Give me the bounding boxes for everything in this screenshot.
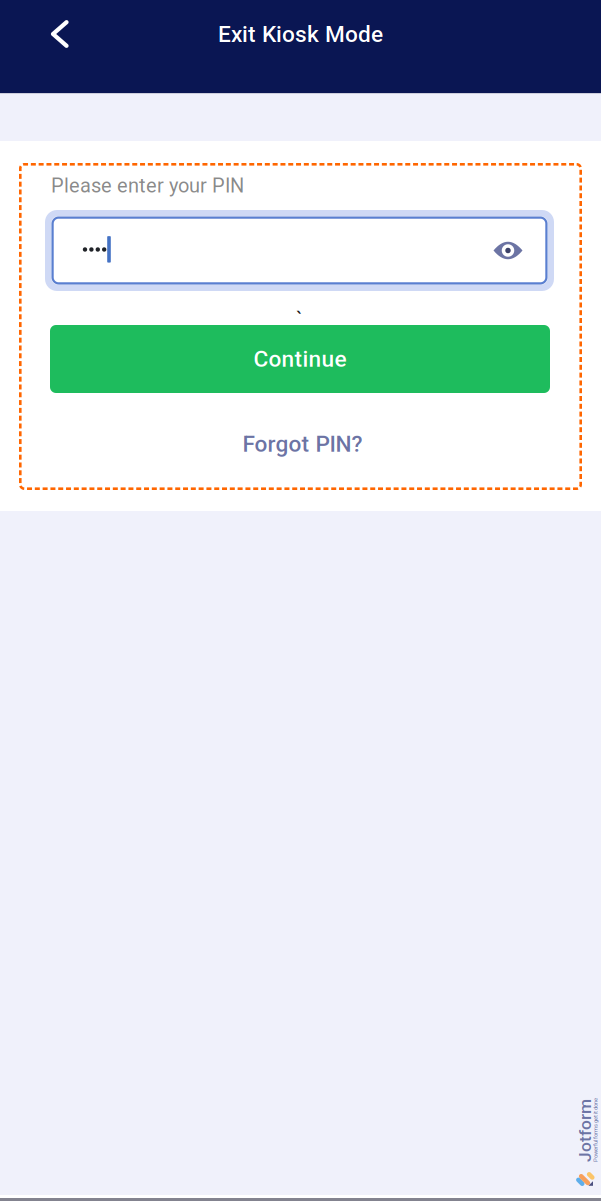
staticText: Continue <box>253 346 346 372</box>
staticText: Powerful forms get it done <box>552 1130 601 1137</box>
staticText: Exit Kiosk Mode <box>218 21 383 48</box>
button[interactable]: Back <box>31 6 87 62</box>
button[interactable]: Show PIN <box>477 218 539 282</box>
staticText: Forgot PIN? <box>242 431 362 457</box>
button[interactable]: Forgot PIN? <box>21 422 584 466</box>
staticText: Please enter your PIN <box>51 174 244 197</box>
staticText: Jotform <box>552 1113 601 1133</box>
staticText: ` <box>296 308 303 333</box>
button[interactable]: Continue <box>50 325 550 393</box>
